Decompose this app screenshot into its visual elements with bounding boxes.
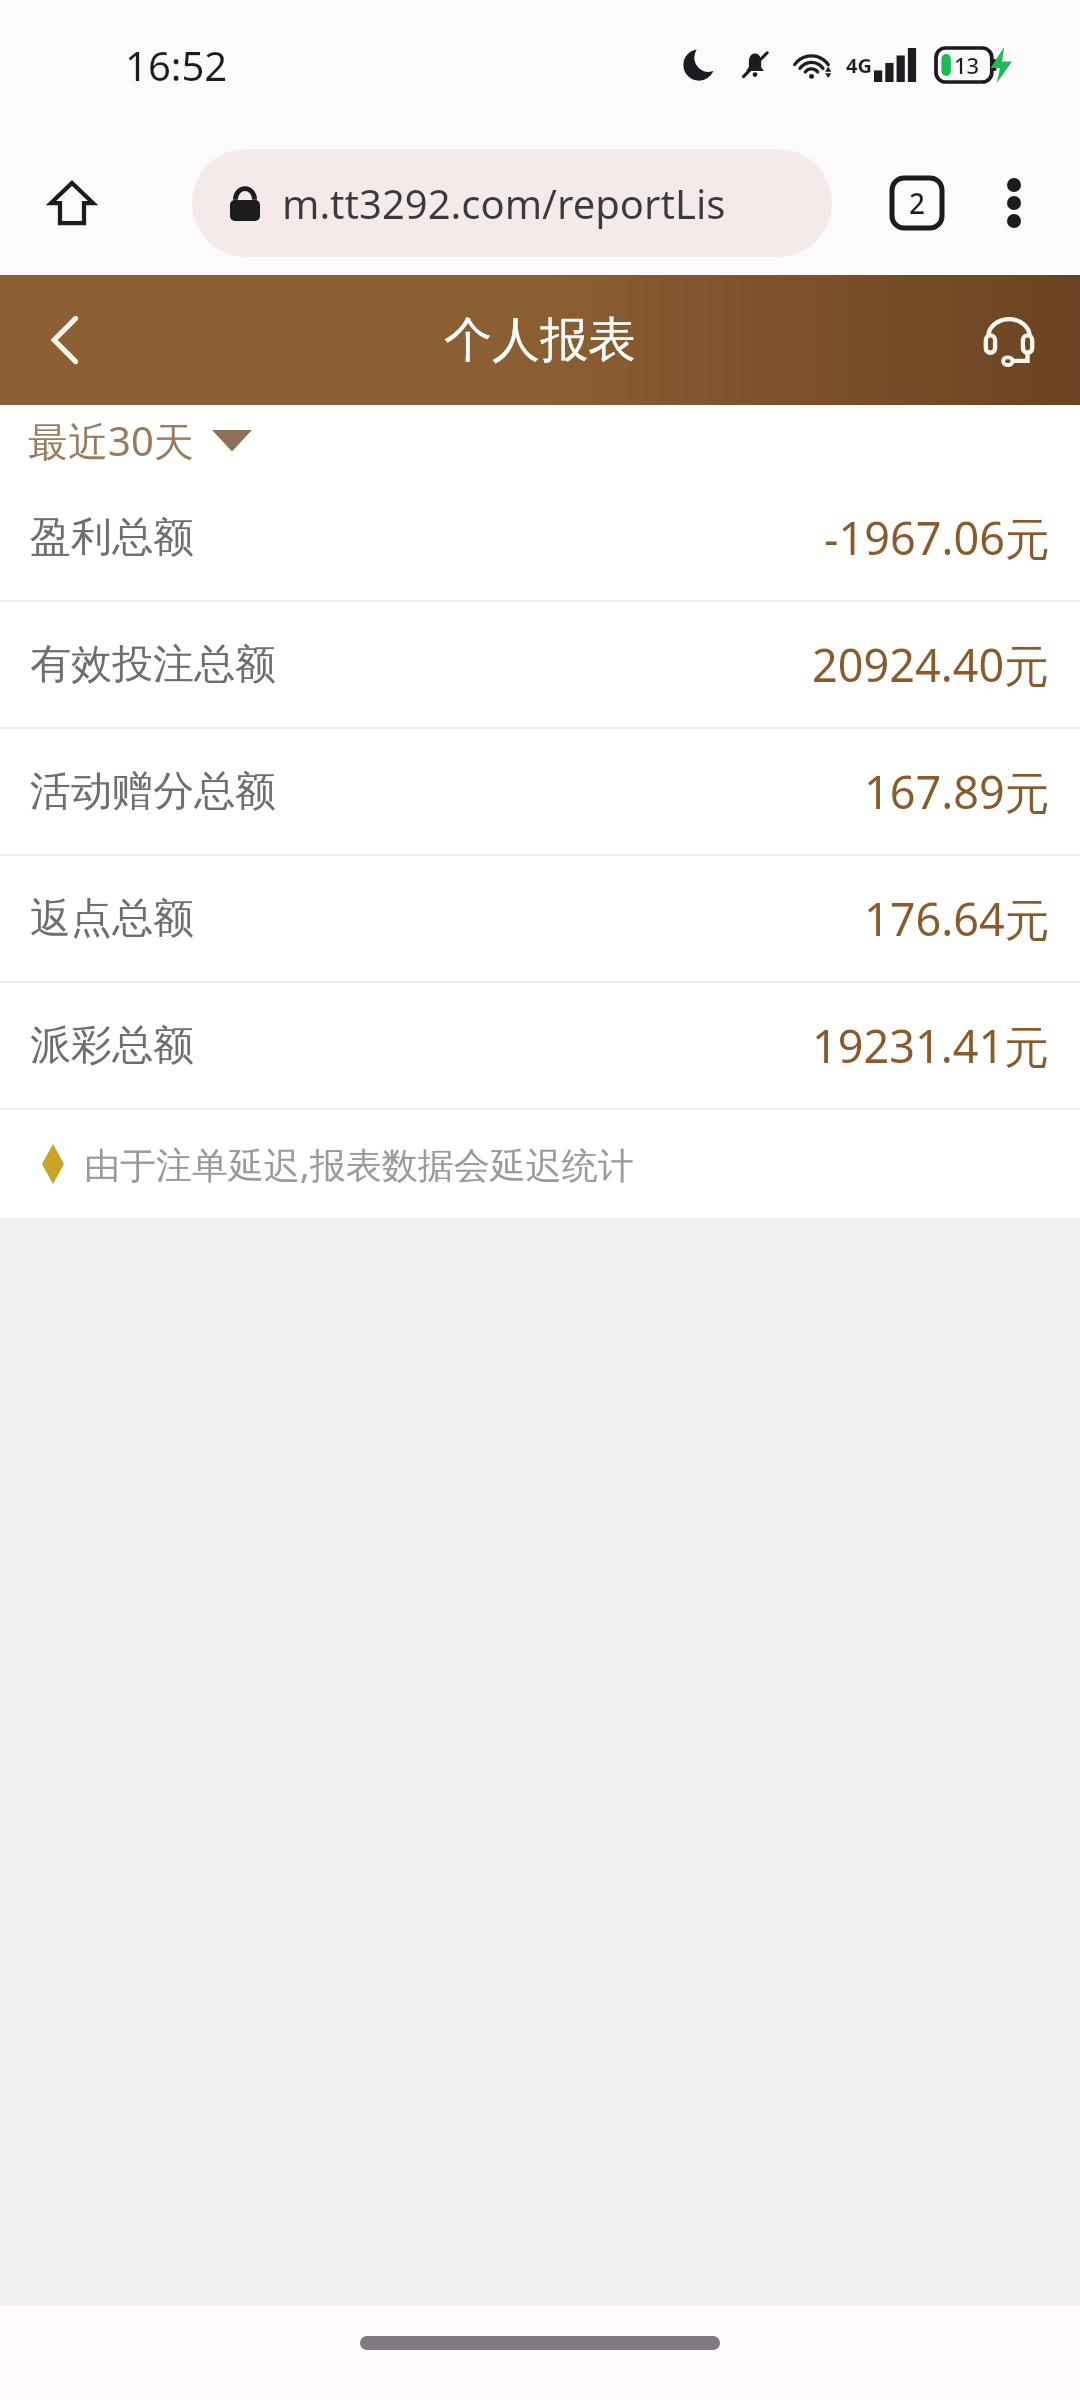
staticText: 4G bbox=[846, 52, 872, 79]
staticText: 有效投注总额 bbox=[30, 639, 276, 691]
button[interactable]: m.tt3292.com/reportLis bbox=[192, 149, 832, 257]
button[interactable]: 派彩总额 bbox=[0, 983, 1080, 1108]
staticText: 2 bbox=[909, 184, 926, 222]
button[interactable]: Home bbox=[40, 171, 104, 235]
staticText: 16:52 bbox=[125, 38, 228, 92]
staticText: 13 bbox=[954, 50, 980, 80]
staticText: 176.64元 bbox=[864, 888, 1050, 949]
button[interactable]: 活动赠分总额 bbox=[0, 729, 1080, 854]
staticText: m.tt3292.com/reportLis bbox=[282, 176, 726, 230]
button[interactable]: Customer service bbox=[964, 295, 1054, 385]
staticText: 派彩总额 bbox=[30, 1020, 194, 1072]
button[interactable]: More options bbox=[982, 171, 1046, 235]
staticText: 20924.40元 bbox=[812, 634, 1050, 695]
button[interactable]: Tabs bbox=[884, 170, 950, 236]
staticText: 167.89元 bbox=[864, 761, 1050, 822]
staticText: 19231.41元 bbox=[812, 1015, 1050, 1076]
button[interactable]: Back bbox=[18, 292, 114, 388]
button[interactable]: 返点总额 bbox=[0, 856, 1080, 981]
button[interactable]: 最近30天 bbox=[0, 405, 1080, 475]
staticText: 个人报表 bbox=[444, 310, 636, 370]
staticText: 由于注单延迟,报表数据会延迟统计 bbox=[84, 1140, 634, 1189]
staticText: 最近30天 bbox=[28, 413, 194, 468]
staticText: 活动赠分总额 bbox=[30, 766, 276, 818]
staticText: 返点总额 bbox=[30, 893, 194, 945]
button[interactable]: 盈利总额 bbox=[0, 475, 1080, 600]
button[interactable]: 有效投注总额 bbox=[0, 602, 1080, 727]
staticText: -1967.06元 bbox=[824, 507, 1050, 568]
staticText: 盈利总额 bbox=[30, 512, 194, 564]
